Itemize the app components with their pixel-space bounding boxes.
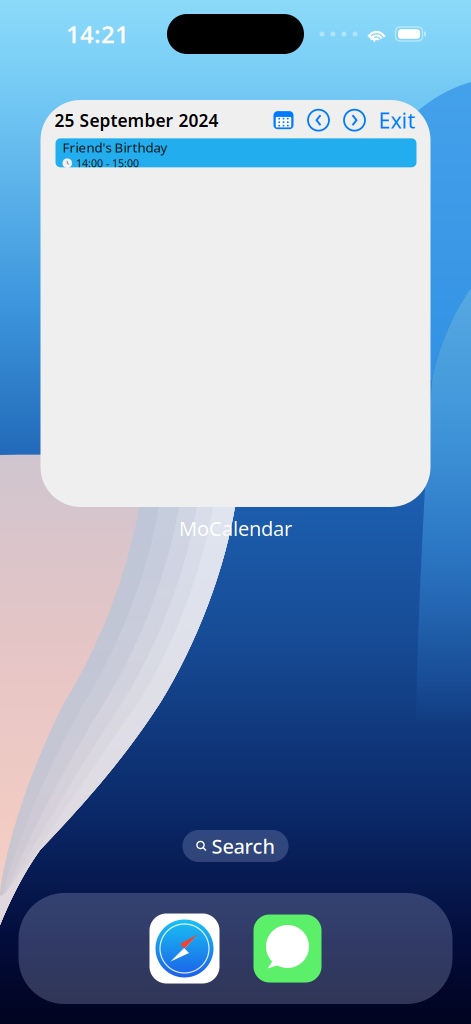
button[interactable]: Exit — [372, 106, 415, 134]
staticText: 25 September 2024 — [54, 109, 218, 132]
button[interactable]: Next day — [336, 106, 372, 134]
staticText: 14:00 - 15:00 — [76, 156, 139, 170]
button[interactable]: Safari — [149, 913, 219, 983]
staticText: Exit — [378, 106, 415, 134]
staticText: Search — [211, 833, 275, 859]
button[interactable]: Search — [182, 830, 288, 862]
button[interactable]: Calendar — [266, 106, 300, 134]
staticText: MoCalendar — [179, 515, 292, 542]
staticText: Friend's Birthday — [62, 138, 167, 156]
staticText: 14:21 — [66, 18, 129, 50]
button[interactable]: Messages — [253, 914, 321, 982]
button[interactable]: Previous day — [300, 106, 336, 134]
button[interactable]: Friend's Birthday — [55, 138, 416, 167]
